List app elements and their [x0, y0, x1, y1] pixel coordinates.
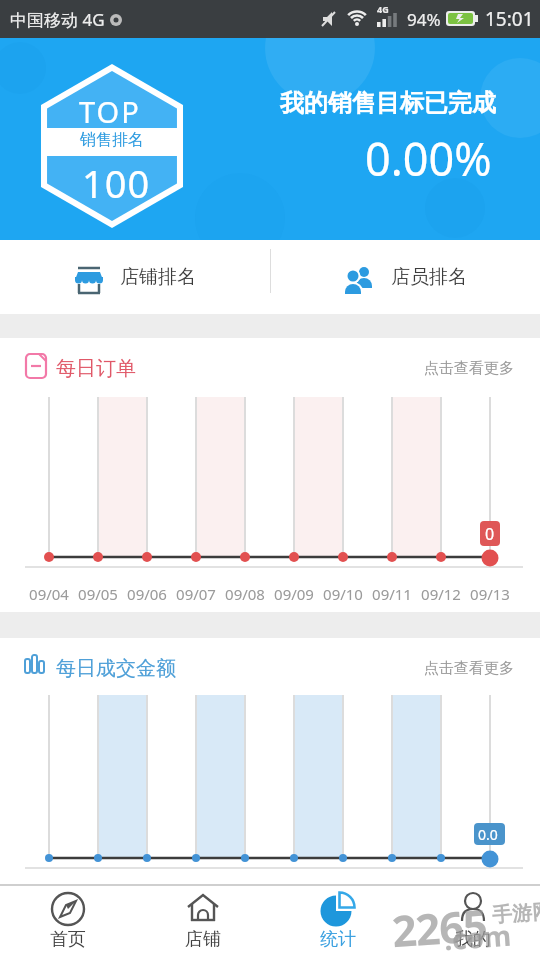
staticText: 100 — [82, 157, 151, 209]
button[interactable]: 店铺 — [135, 886, 270, 960]
staticText: 每日成交金额 — [56, 656, 176, 681]
staticText: 店员排名 — [391, 265, 467, 289]
staticText: 我的 — [455, 928, 491, 951]
staticText: .com — [443, 916, 513, 958]
staticText: 统计 — [320, 928, 356, 951]
staticText: 手游网 — [491, 899, 540, 928]
staticText: 09/10 — [323, 584, 363, 604]
staticText: 2265 — [390, 895, 489, 960]
button[interactable]: 首页 — [0, 886, 135, 960]
staticText: 09/13 — [470, 584, 510, 604]
staticText: 09/12 — [421, 584, 461, 604]
staticText: 09/09 — [274, 584, 314, 604]
staticText: 09/04 — [29, 584, 69, 604]
staticText: 首页 — [50, 928, 86, 951]
staticText: 销售排名 — [80, 130, 144, 150]
staticText: 09/05 — [78, 584, 118, 604]
staticText: 中国移动 4G — [10, 8, 105, 31]
staticText: 每日订单 — [56, 356, 136, 381]
staticText: 店铺 — [185, 928, 221, 951]
staticText: 我的销售目标已完成 — [280, 88, 496, 118]
staticText: 店铺排名 — [120, 265, 196, 289]
staticText: 09/08 — [225, 584, 265, 604]
staticText: 09/06 — [127, 584, 167, 604]
staticText: TOP — [79, 92, 141, 131]
staticText: 94% — [407, 8, 441, 31]
staticText: 0.0 — [478, 825, 498, 844]
staticText: 4G — [377, 3, 389, 15]
staticText: 0.00% — [365, 128, 492, 189]
button[interactable]: 统计 — [270, 886, 405, 960]
staticText: 09/07 — [176, 584, 216, 604]
staticText: 15:01 — [485, 6, 534, 32]
staticText: 点击查看更多 — [424, 359, 514, 378]
button[interactable]: 我的 — [405, 886, 540, 960]
staticText: 09/11 — [372, 584, 412, 604]
button[interactable]: 店员排名 — [270, 240, 540, 314]
staticText: 点击查看更多 — [424, 659, 514, 678]
button[interactable]: 每日成交金额 — [0, 638, 540, 884]
staticText: 0 — [485, 523, 495, 545]
button[interactable]: 每日订单 — [0, 338, 540, 612]
button[interactable]: 店铺排名 — [0, 240, 270, 314]
